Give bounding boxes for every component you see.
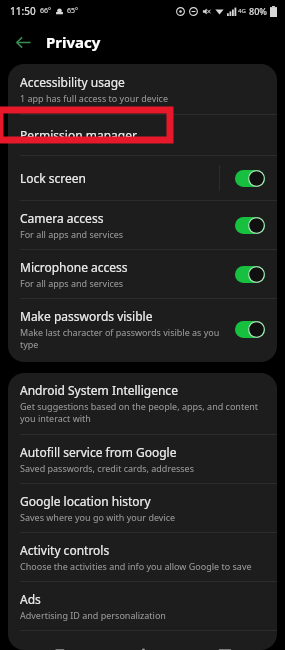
button[interactable]: Microphone access [8,250,277,298]
staticText: Activity controls [20,542,110,558]
button[interactable]: Autofill service from Google [8,435,277,483]
button[interactable]: Microphone access toggle [231,263,269,286]
staticText: Ads [20,591,41,607]
staticText: Google location history [20,493,151,509]
staticText: Get suggestions based on the people, app… [20,400,269,425]
button[interactable]: Accessibility usage [8,64,277,114]
staticText: Microphone access [20,259,128,275]
staticText: Accessibility usage [20,74,125,90]
staticText: Permission manager [20,127,137,143]
button[interactable]: Activity controls [8,533,277,581]
button[interactable]: Lock screen toggle [231,167,269,190]
staticText: Make passwords visible [20,308,153,324]
staticText: Autofill service from Google [20,444,177,460]
button[interactable]: Lock screen [8,156,277,200]
staticText: Android System Intelligence [20,382,178,398]
button[interactable]: Make passwords visible toggle [231,318,269,341]
staticText: Make last character of passwords visible… [20,326,223,351]
staticText: 11:50 [10,4,36,18]
button[interactable]: Make passwords visible [8,299,277,362]
button[interactable]: Google location history [8,484,277,532]
staticText: Saves where you go with your device [20,511,176,523]
staticText: Choose the activities and info you allow… [20,560,252,572]
button[interactable]: Ads [8,582,277,630]
staticText: 66° [40,6,52,16]
button[interactable]: Camera access toggle [231,214,269,237]
staticText: Lock screen [20,170,87,186]
button[interactable]: Android System Intelligence [8,373,277,434]
staticText: Privacy [46,32,101,52]
staticText: 1 app has full access to your device [20,92,168,104]
staticText: Camera access [20,210,104,226]
button[interactable]: Usage & diagnostics [8,631,277,650]
button[interactable]: Camera access [8,201,277,249]
button[interactable]: Back [6,25,40,59]
staticText: 65° [67,6,79,16]
staticText: 4G [238,7,246,15]
staticText: Saved passwords, credit cards, addresses [20,462,194,474]
button[interactable]: Permission manager [8,115,277,155]
staticText: 80% [249,5,267,17]
staticText: For all apps and services [20,228,124,240]
staticText: For all apps and services [20,277,124,289]
staticText: Advertising ID and personalization [20,609,166,621]
